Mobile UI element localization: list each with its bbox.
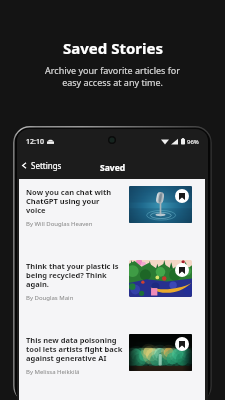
staticText: Archive your favorite articles for easy …: [45, 64, 180, 88]
staticText: This new data poisoning tool lets artist…: [26, 335, 123, 364]
staticText: By Melissa Heikkilä: [26, 368, 80, 376]
button[interactable]: Bookmark: [175, 189, 189, 203]
staticText: By Will Douglas Heaven: [26, 220, 93, 228]
staticText: Saved Stories: [63, 38, 163, 58]
staticText: Now you can chat with ChatGPT using your…: [26, 187, 112, 216]
staticText: Saved: [100, 162, 126, 174]
staticText: Settings: [31, 160, 62, 171]
button[interactable]: Bookmark: [175, 337, 189, 351]
button[interactable]: This new data poisoning tool lets artist…: [19, 327, 205, 400]
button[interactable]: Think that your plastic is being recycle…: [19, 253, 205, 327]
staticText: 96%: [187, 138, 199, 146]
button[interactable]: Bookmark: [175, 263, 189, 277]
button[interactable]: Settings: [17, 155, 68, 176]
staticText: By Douglas Main: [26, 294, 74, 302]
button[interactable]: Now you can chat with ChatGPT using your…: [19, 179, 205, 253]
staticText: Think that your plastic is being recycle…: [26, 261, 119, 290]
staticText: 12:10: [26, 137, 44, 147]
